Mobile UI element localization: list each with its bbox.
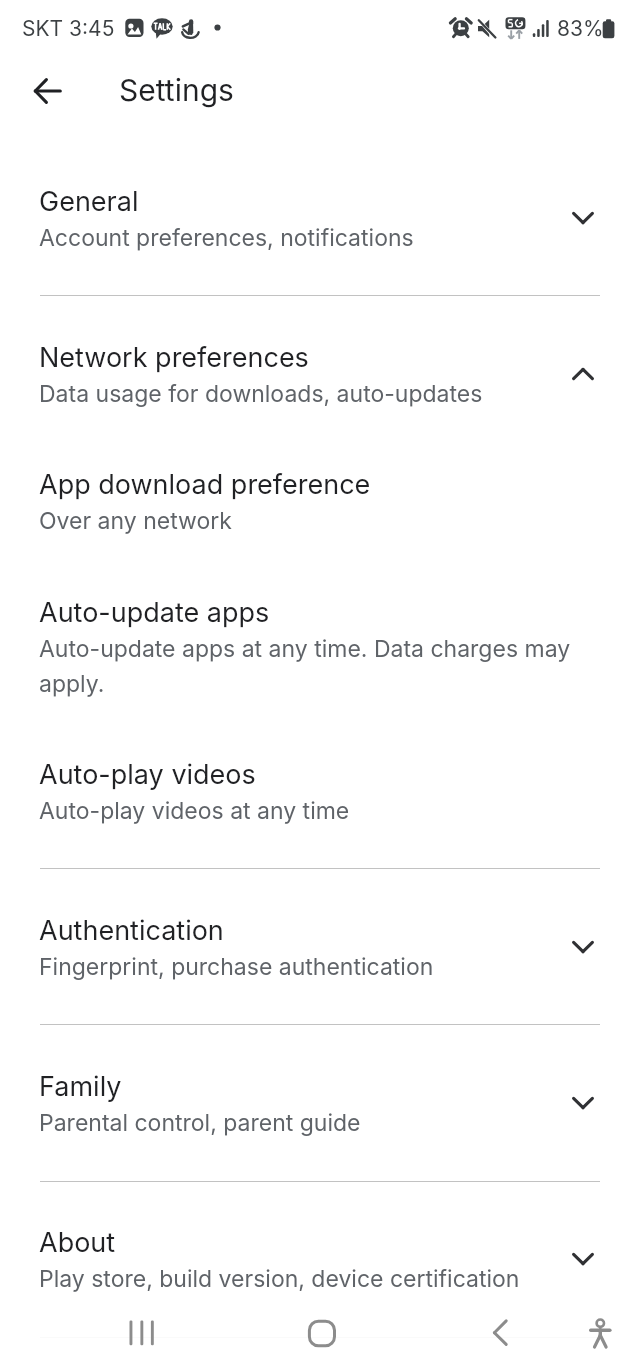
other: Collapse (559, 350, 607, 398)
staticText: Authentication (39, 914, 224, 947)
other: Expand (559, 923, 607, 971)
staticText: Play store, build version, device certif… (39, 1265, 587, 1293)
button[interactable]: General (0, 185, 640, 295)
button[interactable]: Authentication (0, 914, 640, 1024)
staticText: Family (39, 1070, 122, 1103)
staticText: General (39, 185, 139, 218)
other: Expand (559, 194, 607, 242)
staticText: Network preferences (39, 341, 309, 374)
staticText: Auto-play videos (39, 758, 256, 791)
button[interactable]: Home (281, 1297, 361, 1369)
button[interactable]: Recent apps (101, 1297, 181, 1369)
button[interactable]: Network preferences (0, 341, 640, 451)
staticText: Fingerprint, purchase authentication (39, 953, 587, 981)
staticText: 83% (557, 16, 604, 41)
button[interactable]: About (0, 1226, 640, 1336)
staticText: Data usage for downloads, auto-updates (39, 380, 587, 408)
button[interactable]: App download preference (0, 468, 640, 578)
staticText: Auto-update apps (39, 596, 270, 629)
other: Expand (559, 1079, 607, 1127)
staticText: Auto-update apps at any time. Data charg… (39, 635, 587, 698)
staticText: Parental control, parent guide (39, 1109, 587, 1137)
other: Expand (559, 1235, 607, 1283)
staticText: Account preferences, notifications (39, 224, 587, 252)
button[interactable]: Family (0, 1070, 640, 1180)
staticText: Auto-play videos at any time (39, 797, 587, 825)
button[interactable]: Auto-update apps (0, 596, 640, 706)
staticText: Settings (119, 72, 234, 108)
staticText: SKT 3:45 (22, 16, 115, 41)
button[interactable]: Back (460, 1297, 540, 1369)
staticText: Over any network (39, 507, 587, 535)
staticText: App download preference (39, 468, 371, 501)
button[interactable]: Back (23, 67, 71, 115)
button[interactable]: Accessibility (560, 1297, 640, 1369)
staticText: About (39, 1226, 116, 1259)
button[interactable]: Auto-play videos (0, 758, 640, 868)
